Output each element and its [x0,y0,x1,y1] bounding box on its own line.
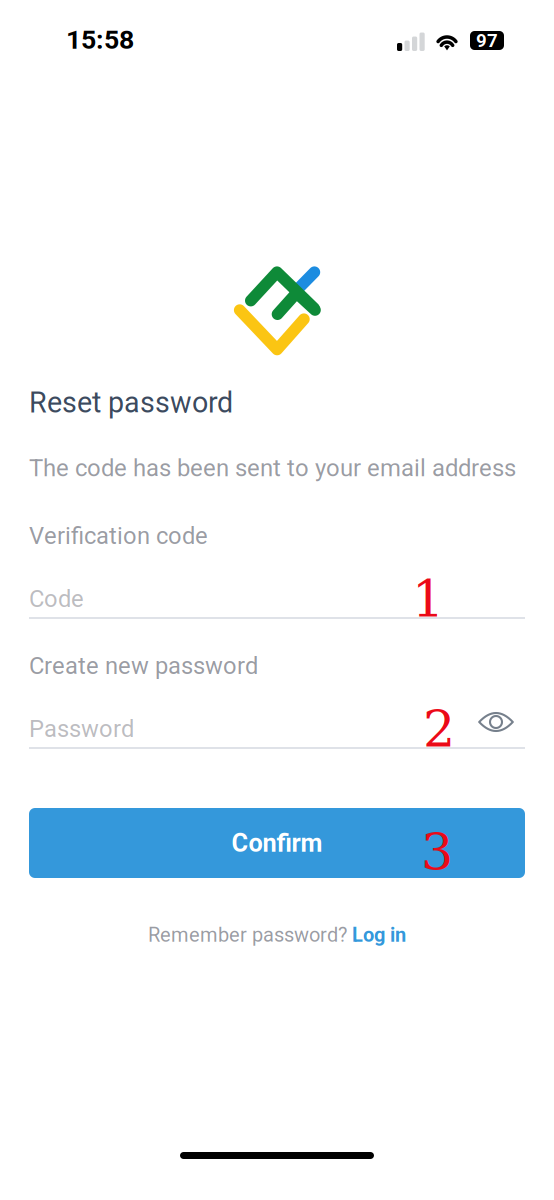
staticText: Code [29,585,84,613]
staticText: 1 [412,569,444,628]
button[interactable]: Log in [352,923,406,947]
staticText: Log in [352,923,406,947]
staticText: 97 [476,30,498,51]
staticText: The code has been sent to your email add… [29,454,516,482]
staticText: 2 [423,699,455,758]
staticText: Password [29,715,134,743]
staticText: Remember password? [148,923,352,947]
button[interactable]: Confirm [29,808,525,878]
button[interactable]: Code [29,578,525,620]
staticText: Create new password [29,652,258,680]
staticText: Reset password [29,386,233,420]
staticText: Verification code [29,522,208,550]
staticText: 3 [421,822,453,881]
staticText: Confirm [231,828,322,858]
button[interactable]: Show password [467,708,525,750]
staticText: 15:58 [66,24,134,55]
